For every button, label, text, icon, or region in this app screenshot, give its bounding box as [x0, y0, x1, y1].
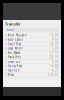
staticText: Total — [8, 73, 14, 77]
staticText: Dave Miller — [8, 47, 23, 50]
button[interactable]: Bob Carter — [3, 38, 61, 42]
button[interactable]: Frank Ortiz — [3, 55, 61, 60]
staticText: 5.00 — [52, 47, 59, 50]
staticText: Alice Nguyen — [8, 33, 27, 37]
staticText: 6.25 — [52, 69, 59, 72]
staticText: Grace Lee — [8, 60, 21, 63]
staticText: 125.25 — [48, 73, 59, 77]
staticText: 9.40 — [52, 60, 59, 63]
button[interactable]: Henry Park — [3, 64, 61, 68]
staticText: Henry Park — [8, 64, 22, 68]
button[interactable]: Total — [3, 73, 61, 77]
staticText: 12.00 — [50, 33, 59, 37]
staticText: 17.75 — [50, 51, 59, 55]
button[interactable]: Dave Miller — [3, 46, 61, 51]
staticText: Bob Carter — [8, 38, 23, 41]
button[interactable]: Ivy Chen — [3, 68, 61, 73]
button[interactable]: Erin Walsh — [3, 51, 61, 55]
staticText: Carol Diaz — [8, 42, 21, 46]
staticText: Ivy Chen — [8, 69, 20, 72]
staticText: 14.00 — [50, 64, 59, 68]
staticText: Search — [6, 28, 14, 32]
button[interactable]: Grace Lee — [3, 60, 61, 64]
staticText: 22.10 — [50, 55, 59, 59]
staticText: Frank Ortiz — [8, 55, 21, 59]
button[interactable]: Alice Nguyen — [3, 33, 61, 38]
staticText: Transfer — [5, 21, 21, 26]
staticText: Erin Walsh — [8, 51, 21, 55]
staticText: 30.25 — [50, 42, 59, 46]
button[interactable]: Carol Diaz — [3, 42, 61, 46]
staticText: 8.50 — [52, 38, 59, 41]
